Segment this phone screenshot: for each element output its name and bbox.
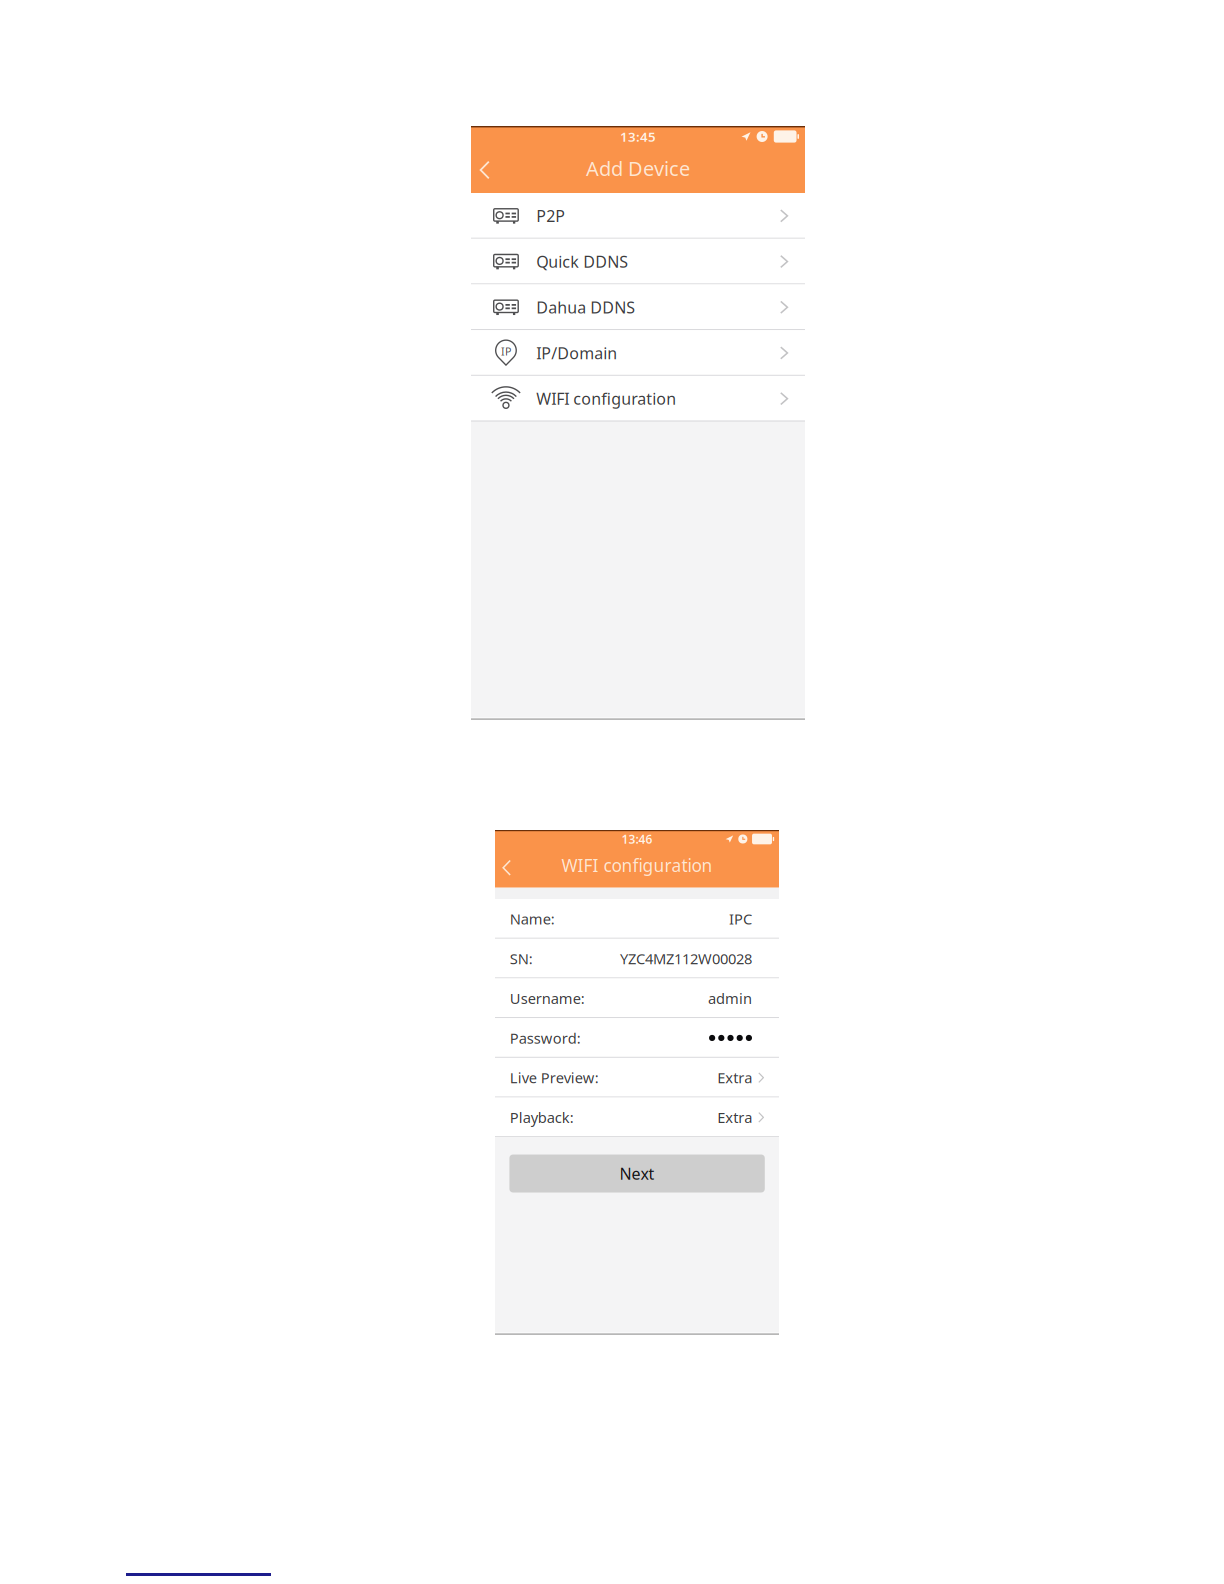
button[interactable]: P2P xyxy=(471,193,805,239)
button[interactable]: IP xyxy=(471,330,805,376)
button[interactable]: Dahua DDNS xyxy=(471,284,805,330)
staticText: Quick DDNS xyxy=(536,251,628,272)
staticText: P2P xyxy=(536,205,565,226)
staticText: Password: xyxy=(510,1028,581,1048)
button[interactable]: Quick DDNS xyxy=(471,239,805,284)
staticText: IP xyxy=(501,344,511,358)
staticText: Playback: xyxy=(510,1108,574,1127)
staticText: Next xyxy=(620,1163,655,1184)
staticText: 13:45 xyxy=(620,128,656,145)
button[interactable]: Next xyxy=(509,1154,765,1192)
staticText: Dahua DDNS xyxy=(536,297,635,318)
staticText: IPC xyxy=(729,909,752,929)
staticText: Live Preview: xyxy=(510,1068,599,1087)
staticText: Add Device xyxy=(586,155,690,181)
staticText: Name: xyxy=(510,909,555,929)
staticText: admin xyxy=(708,988,752,1008)
staticText: Username: xyxy=(510,988,585,1008)
staticText: YZC4MZ112W00028 xyxy=(620,949,752,968)
staticText: WIFI configuration xyxy=(561,854,712,877)
staticText: IP/Domain xyxy=(536,342,617,363)
button[interactable]: Back xyxy=(480,147,506,193)
staticText: Extra xyxy=(717,1108,752,1127)
button[interactable]: Playback: xyxy=(495,1097,779,1137)
staticText: SN: xyxy=(510,949,533,968)
staticText: Extra xyxy=(717,1068,752,1087)
button[interactable]: WIFI configuration xyxy=(471,376,805,421)
button[interactable]: Live Preview: xyxy=(495,1058,779,1097)
staticText: 13:46 xyxy=(621,831,652,847)
staticText: WIFI configuration xyxy=(536,388,676,409)
button[interactable]: Back xyxy=(502,848,525,887)
